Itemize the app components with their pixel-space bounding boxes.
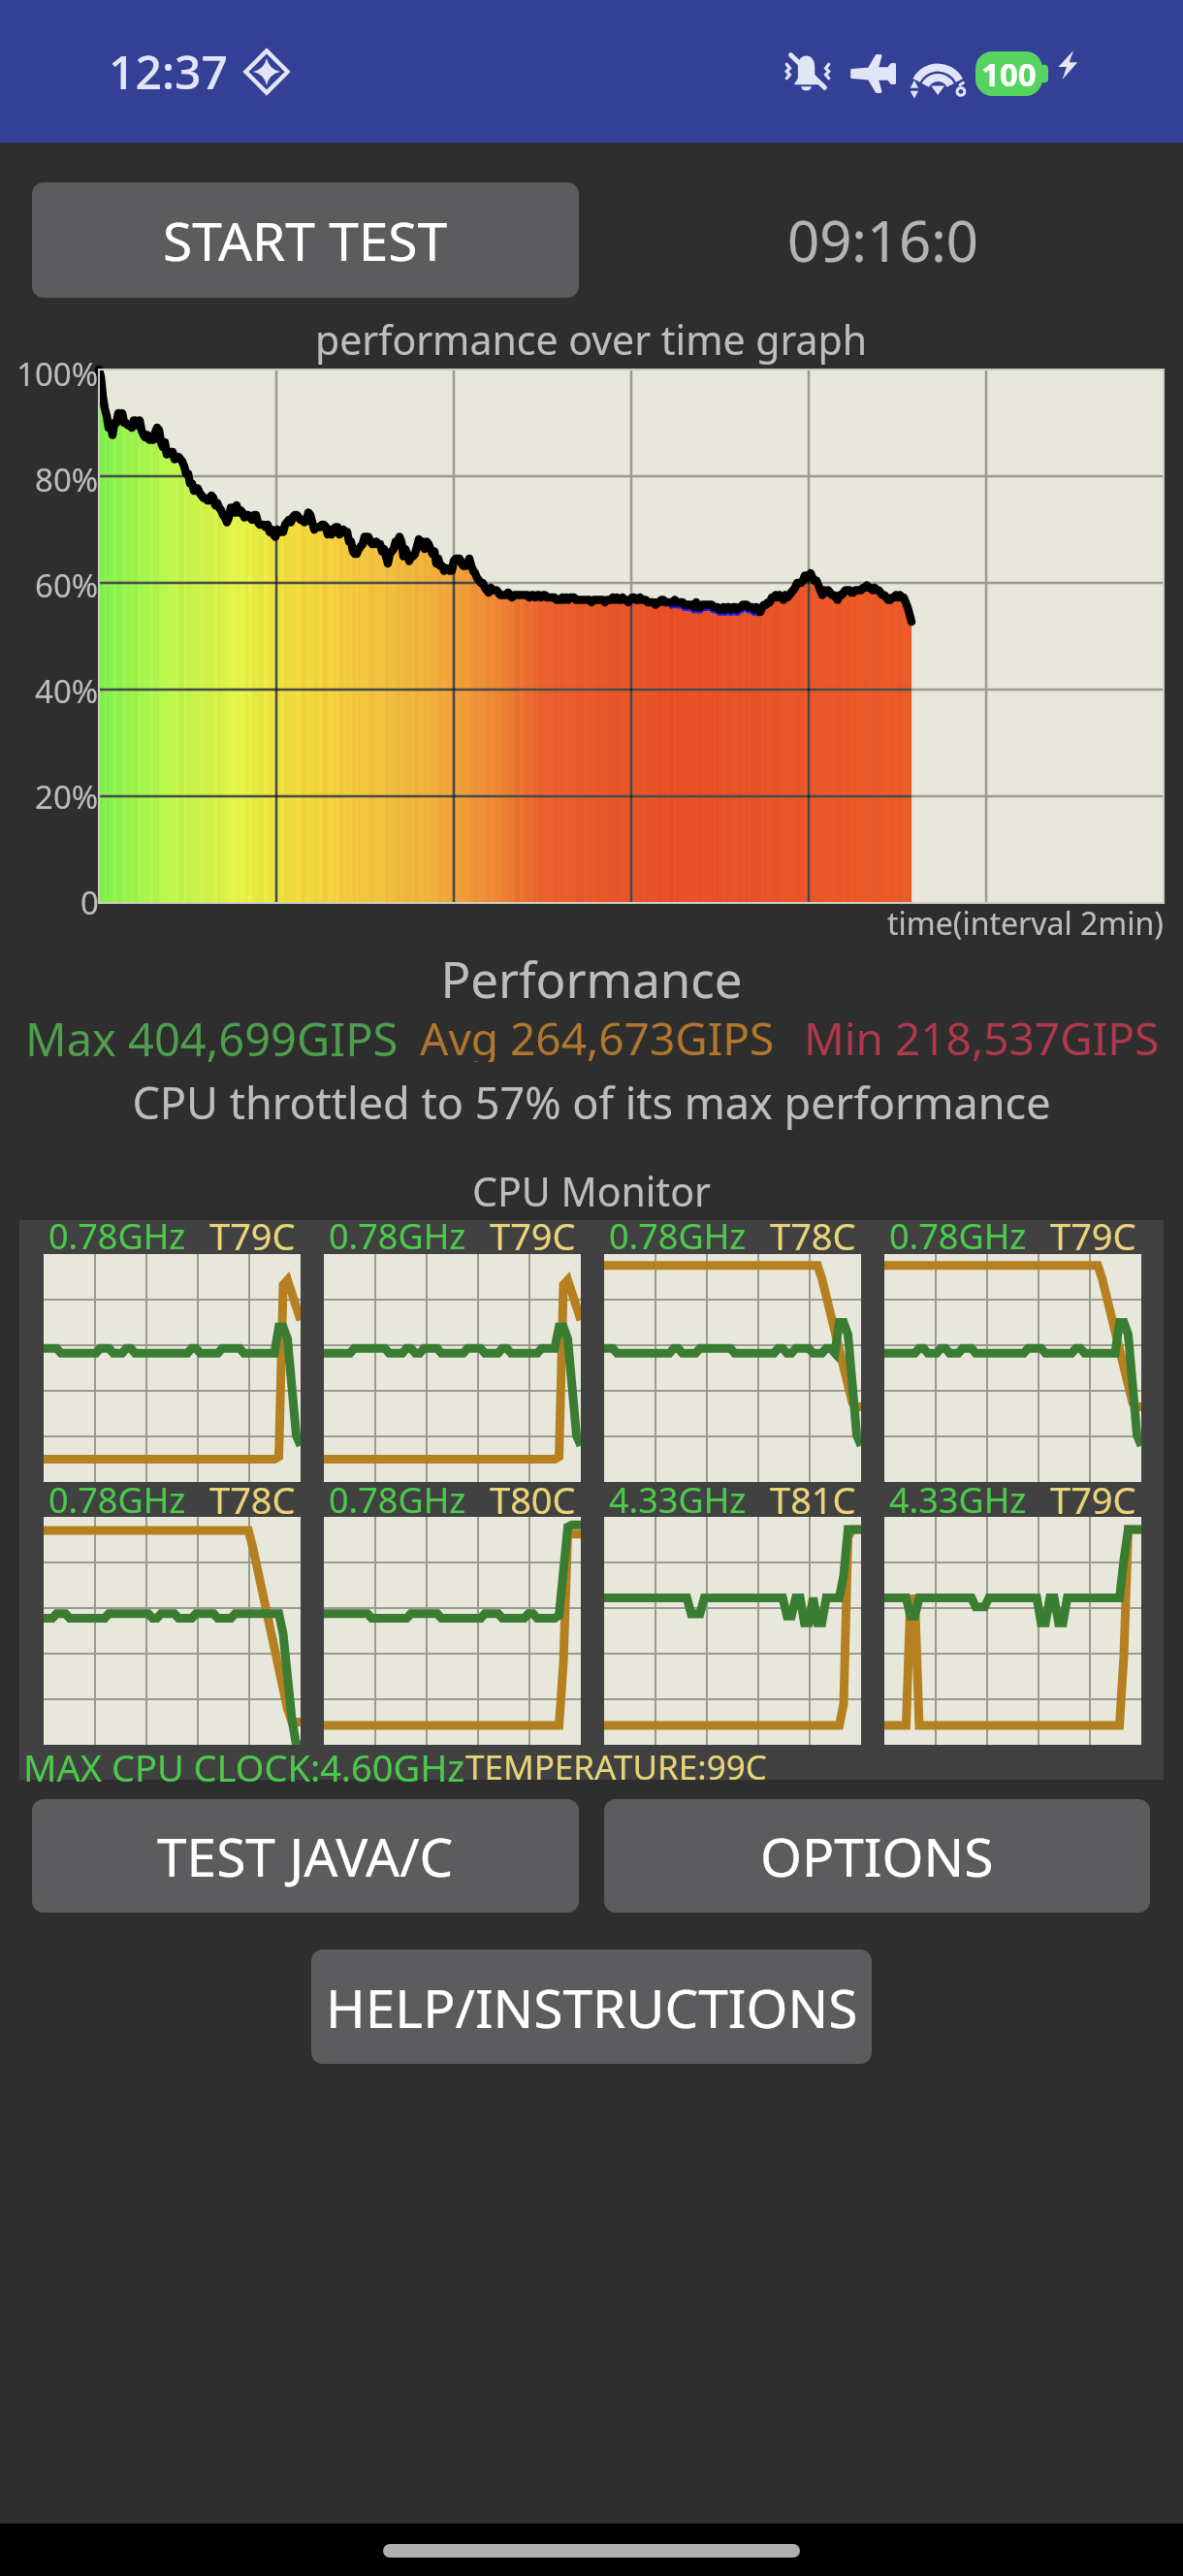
- staticText: T80C: [490, 1474, 576, 1525]
- staticText: HELP/INSTRUCTIONS: [326, 1971, 858, 2044]
- staticText: 4.33GHz: [889, 1476, 1027, 1524]
- staticText: performance over time graph: [315, 312, 868, 365]
- button[interactable]: TEST JAVA/C: [32, 1799, 579, 1913]
- staticText: START TEST: [163, 204, 448, 276]
- staticText: Min 218,537GIPS: [804, 1008, 1160, 1062]
- staticText: 0.78GHz: [48, 1476, 186, 1524]
- staticText: 20%: [35, 775, 99, 819]
- staticText: T79C: [490, 1210, 576, 1261]
- staticText: 0.78GHz: [889, 1212, 1027, 1260]
- staticText: 80%: [35, 458, 99, 501]
- staticText: Max 404,699GIPS: [25, 1008, 399, 1062]
- staticText: 4.33GHz: [609, 1476, 747, 1524]
- staticText: 40%: [35, 669, 99, 713]
- staticText: 0.78GHz: [329, 1212, 466, 1260]
- staticText: 0.78GHz: [48, 1212, 186, 1260]
- staticText: 12:37: [109, 40, 228, 103]
- staticText: T81C: [770, 1474, 856, 1525]
- staticText: T79C: [1050, 1210, 1136, 1261]
- button[interactable]: HELP/INSTRUCTIONS: [311, 1949, 872, 2064]
- staticText: OPTIONS: [760, 1819, 994, 1892]
- staticText: T79C: [209, 1210, 296, 1261]
- staticText: TEST JAVA/C: [157, 1819, 454, 1892]
- button[interactable]: START TEST: [32, 182, 579, 298]
- staticText: T78C: [770, 1210, 856, 1261]
- staticText: time(interval 2min): [887, 902, 1164, 945]
- staticText: T78C: [209, 1474, 296, 1525]
- staticText: CPU Monitor: [472, 1164, 711, 1218]
- staticText: 100: [981, 52, 1037, 96]
- staticText: 60%: [35, 563, 99, 607]
- staticText: 0.78GHz: [329, 1476, 466, 1524]
- staticText: TEMPERATURE:99C: [465, 1744, 767, 1790]
- staticText: Performance: [440, 945, 743, 1012]
- staticText: 0.78GHz: [609, 1212, 747, 1260]
- staticText: T79C: [1050, 1474, 1136, 1525]
- staticText: 100%: [16, 352, 99, 396]
- staticText: MAX CPU CLOCK:4.60GHz: [23, 1742, 465, 1792]
- button[interactable]: OPTIONS: [604, 1799, 1150, 1913]
- staticText: CPU throttled to 57% of its max performa…: [132, 1073, 1051, 1132]
- staticText: 0: [80, 881, 99, 924]
- staticText: Avg 264,673GIPS: [420, 1008, 775, 1062]
- staticText: 09:16:0: [787, 202, 978, 278]
